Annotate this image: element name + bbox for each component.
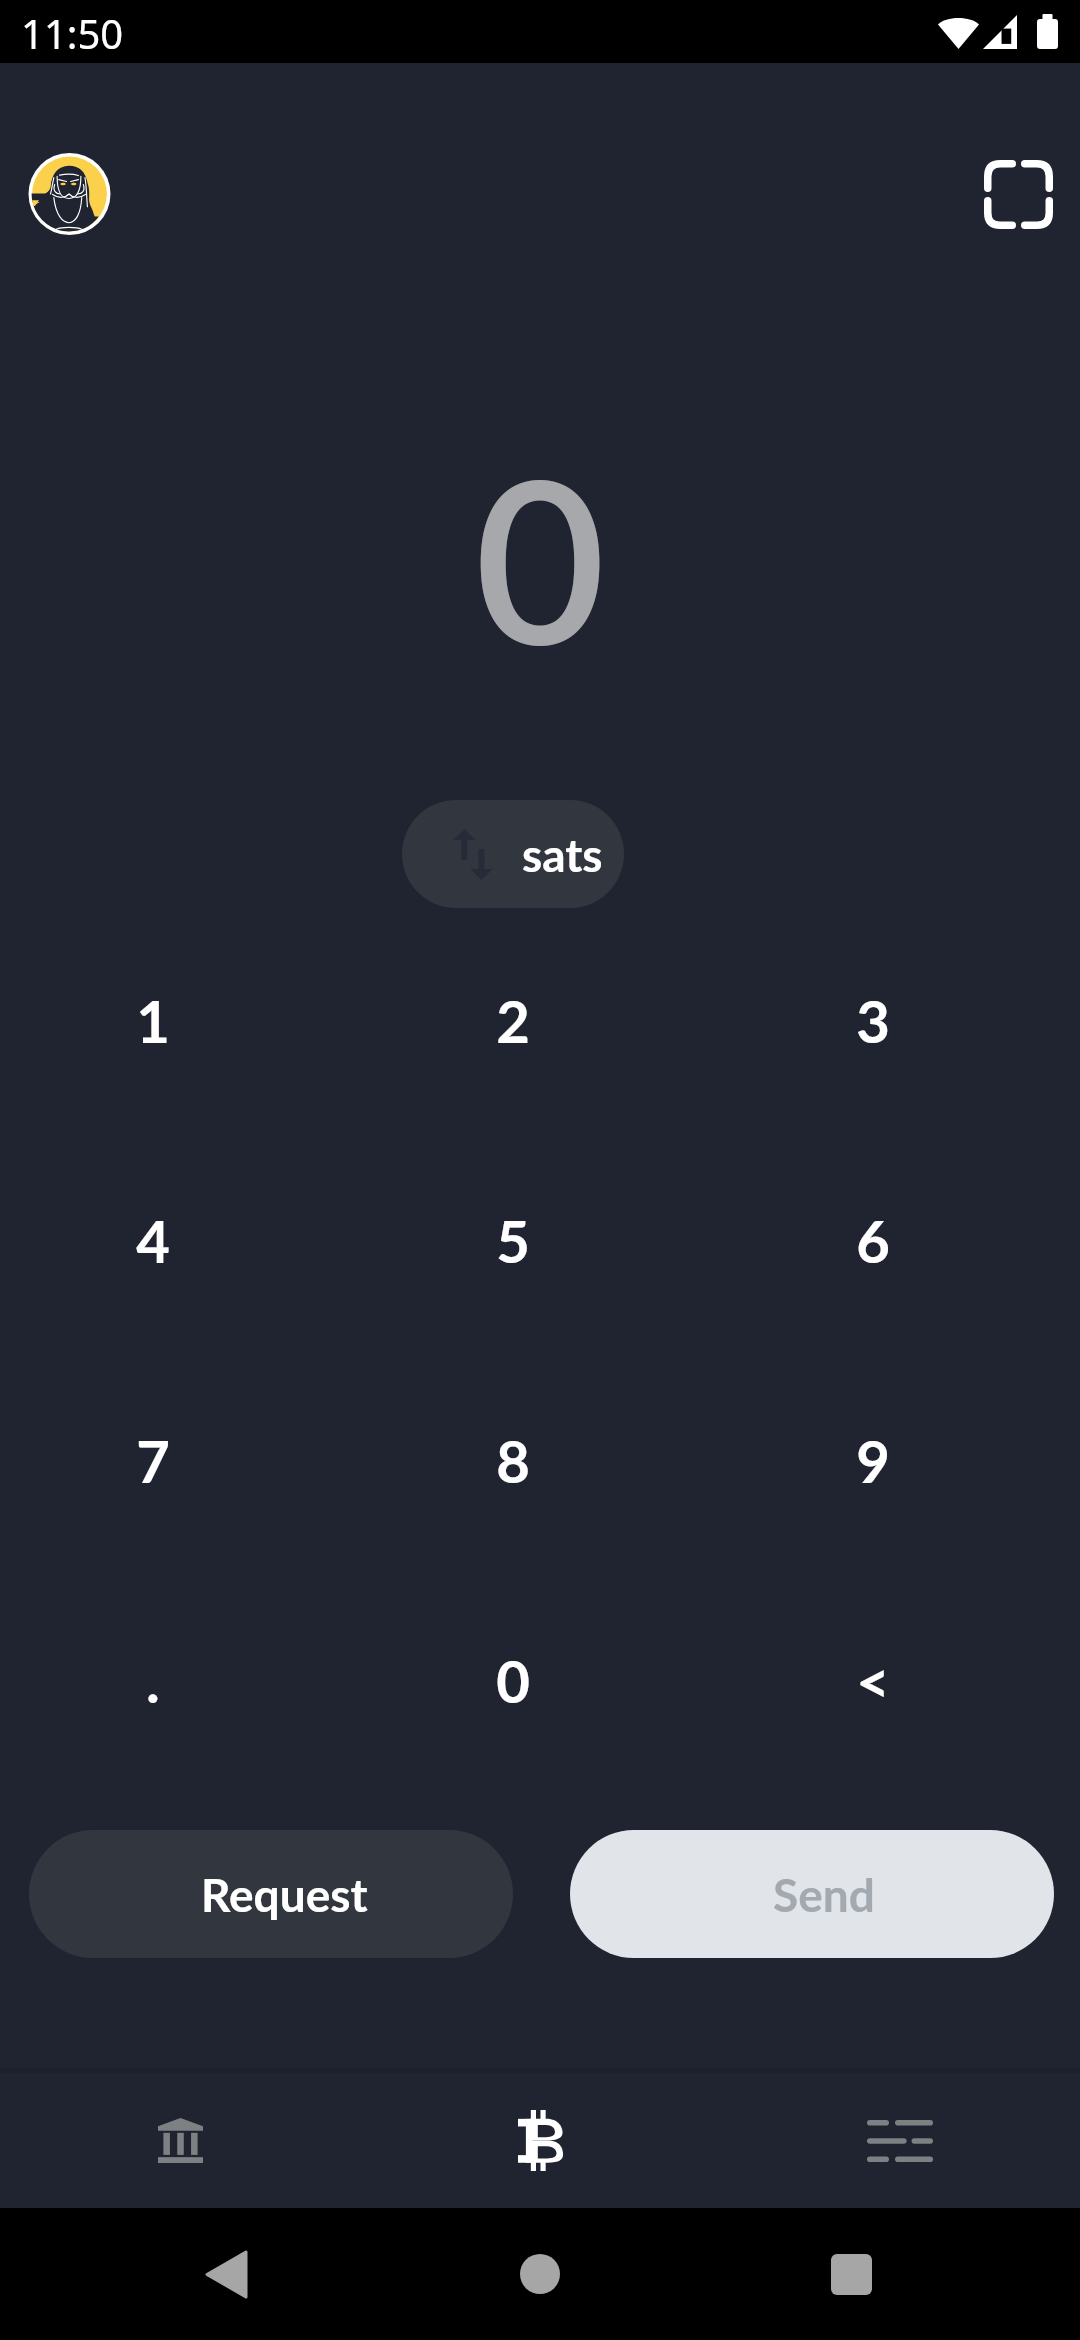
button[interactable]: 0 (333, 1571, 693, 1791)
button[interactable]: Scan QR code (970, 153, 1066, 235)
staticText: 2 (496, 986, 530, 1056)
button[interactable]: Recent apps (791, 2208, 911, 2340)
button[interactable]: Request (29, 1830, 513, 1958)
staticText: sats (522, 827, 603, 882)
button[interactable]: Back (166, 2208, 286, 2340)
button[interactable]: Home (480, 2208, 600, 2340)
staticText: 11:50 (21, 6, 124, 60)
button[interactable]: 2 (333, 911, 693, 1131)
button[interactable]: Profile (28, 153, 111, 235)
staticText: Request (201, 1867, 368, 1922)
button[interactable]: Wallet (360, 2073, 720, 2208)
button[interactable]: 6 (693, 1131, 1053, 1351)
button[interactable]: 9 (693, 1351, 1053, 1571)
button[interactable]: 4 (0, 1131, 333, 1351)
button[interactable]: < (693, 1571, 1053, 1791)
staticText: Send (773, 1867, 875, 1922)
staticText: < (856, 1646, 890, 1716)
button[interactable]: . (0, 1571, 333, 1791)
staticText: 8 (496, 1426, 530, 1496)
staticText: 9 (856, 1426, 890, 1496)
staticText: 0 (474, 421, 606, 692)
button[interactable]: 8 (333, 1351, 693, 1571)
staticText: 5 (496, 1206, 530, 1276)
button[interactable]: 7 (0, 1351, 333, 1571)
button[interactable]: 3 (693, 911, 1053, 1131)
button[interactable]: Activity (720, 2073, 1080, 2208)
staticText: . (146, 1646, 160, 1716)
button[interactable]: 1 (0, 911, 333, 1131)
button[interactable]: Accounts (0, 2073, 360, 2208)
button[interactable]: Send (570, 1830, 1054, 1958)
staticText: 3 (856, 986, 890, 1056)
staticText: 0 (496, 1646, 530, 1716)
button[interactable]: 5 (333, 1131, 693, 1351)
staticText: 4 (136, 1206, 170, 1276)
staticText: 6 (856, 1206, 890, 1276)
staticText: 7 (136, 1426, 170, 1496)
staticText: 1 (136, 986, 170, 1056)
button[interactable]: sats (402, 800, 624, 908)
